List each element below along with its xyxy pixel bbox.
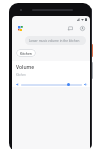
staticText: Lower music volume in the kitchen to 30% [29, 39, 82, 43]
button[interactable]: Cast [66, 24, 75, 33]
staticText: Kitchen [20, 51, 32, 55]
button[interactable]: Volume slider [16, 81, 87, 87]
button[interactable]: Volume [12, 61, 90, 87]
button[interactable]: Volume rocker [91, 62, 93, 79]
staticText: Volume [16, 64, 35, 71]
staticText: Kitchen [16, 73, 26, 77]
button[interactable]: Lower music volume in the kitchen to 30% [25, 36, 86, 45]
button[interactable]: Power button [91, 44, 93, 57]
button[interactable]: Kitchen [16, 49, 36, 57]
button[interactable]: Google Home [16, 24, 25, 33]
button[interactable]: Account [78, 24, 87, 33]
